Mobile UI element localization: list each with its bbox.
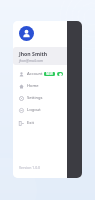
staticText: NEW	[46, 72, 53, 76]
staticText: Exit	[27, 120, 34, 126]
button[interactable]: Home	[13, 80, 67, 92]
button[interactable]: Settings	[13, 92, 67, 104]
button[interactable]: Account	[13, 68, 67, 80]
staticText: Jhon Smith	[19, 50, 48, 57]
button[interactable]: Toggle account	[57, 72, 63, 76]
button[interactable]: Exit	[13, 117, 67, 129]
button[interactable]: Jhon Smith	[13, 47, 67, 65]
staticText: Version 1.0.0	[19, 165, 41, 170]
staticText: jhon@mail.com	[19, 58, 44, 62]
button[interactable]: Logout	[13, 104, 67, 116]
button[interactable]: Main content	[67, 21, 82, 178]
button[interactable]: Profile photo	[19, 26, 34, 41]
staticText: Logout	[27, 107, 41, 113]
staticText: Home	[27, 83, 39, 89]
staticText: Account	[27, 71, 43, 77]
staticText: Settings	[27, 95, 43, 101]
